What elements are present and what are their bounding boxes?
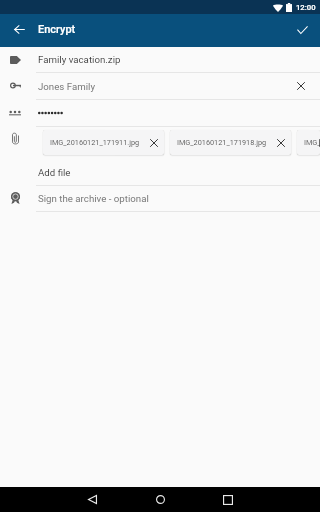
button[interactable]: Remove attachment: [144, 130, 164, 155]
button[interactable]: Add file: [0, 160, 320, 185]
staticText: IMG_20160121_171918.jpg: [177, 138, 267, 147]
button[interactable]: Sign the archive - optional: [0, 186, 320, 211]
button[interactable]: IMG_20160121_171925.jpg: [297, 130, 320, 155]
button[interactable]: IMG_20160121_171918.jpg: [170, 130, 291, 155]
button[interactable]: Done: [285, 14, 320, 47]
button[interactable]: Jones Family: [0, 73, 320, 99]
button[interactable]: Clear recipient: [282, 73, 320, 99]
button[interactable]: IMG_20160121_171911.jpg: [43, 130, 164, 155]
staticText: Sign the archive - optional: [38, 193, 149, 204]
staticText: IMG_20160121_171925.jpg: [304, 138, 320, 147]
button[interactable]: Remove attachment: [271, 130, 291, 155]
button[interactable]: Family vacation.zip: [0, 47, 320, 72]
staticText: Family vacation.zip: [38, 54, 121, 65]
button[interactable]: Recent apps: [205, 487, 251, 512]
staticText: IMG_20160121_171911.jpg: [50, 138, 140, 147]
button[interactable]: Home: [137, 487, 183, 512]
staticText: Encrypt: [38, 23, 76, 36]
staticText: 12:00: [296, 3, 316, 12]
button[interactable]: [0, 100, 320, 126]
staticText: Jones Family: [38, 81, 96, 92]
staticText: Add file: [38, 167, 71, 178]
button[interactable]: Navigate up: [0, 14, 38, 47]
button[interactable]: Back: [69, 487, 115, 512]
